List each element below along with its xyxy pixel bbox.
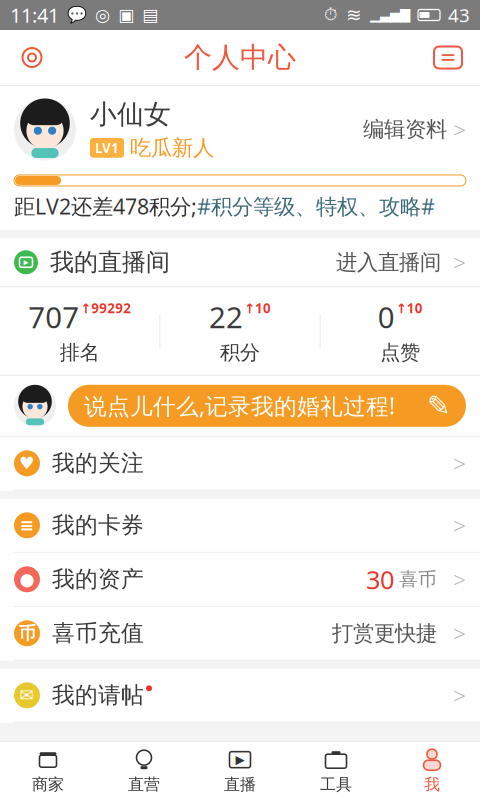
- staticText: 我的直播间: [50, 247, 170, 277]
- staticText: 说点儿什么,记录我的婚礼过程!: [84, 391, 395, 421]
- staticText: 距LV2还差478积分;: [14, 192, 197, 220]
- staticText: >: [453, 448, 466, 478]
- staticText: LV1: [95, 139, 119, 157]
- staticText: ▁▃▅▇: [370, 7, 410, 22]
- staticText: ▣: [118, 5, 134, 25]
- staticText: 打赏更快捷: [332, 620, 437, 646]
- button[interactable]: #积分等级、特权、攻略#: [197, 192, 435, 220]
- staticText: 我的请帖: [52, 681, 144, 709]
- staticText: ▤: [142, 5, 158, 25]
- staticText: 币: [18, 623, 35, 644]
- staticText: 点赞: [380, 340, 420, 365]
- button[interactable]: 直营: [96, 742, 192, 800]
- staticText: 编辑资料: [363, 116, 447, 143]
- staticText: 43: [448, 3, 470, 27]
- button[interactable]: 工具: [288, 742, 384, 800]
- staticText: 个人中心: [184, 40, 296, 75]
- staticText: ●: [19, 569, 34, 589]
- staticText: ≡: [19, 515, 34, 535]
- staticText: 排名: [60, 340, 100, 365]
- staticText: >: [453, 680, 466, 710]
- button[interactable]: 说点儿什么,记录我的婚礼过程!: [0, 376, 480, 436]
- button[interactable]: 商家: [0, 742, 96, 800]
- button[interactable]: ≡: [0, 499, 480, 553]
- staticText: 30: [366, 562, 394, 596]
- staticText: 商家: [32, 775, 64, 794]
- staticText: 0: [378, 297, 395, 336]
- staticText: >: [453, 247, 466, 277]
- button[interactable]: ✉: [0, 669, 480, 723]
- staticText: 直播: [224, 775, 256, 794]
- staticText: 11:41: [10, 2, 59, 28]
- button[interactable]: ▶: [192, 742, 288, 800]
- staticText: >: [453, 510, 466, 540]
- staticText: ▶: [235, 753, 244, 766]
- staticText: 💬: [67, 6, 87, 24]
- staticText: 直营: [128, 775, 160, 794]
- button[interactable]: ●: [0, 553, 480, 607]
- staticText: 喜币充值: [52, 619, 144, 647]
- staticText: >: [453, 618, 466, 648]
- staticText: 工具: [320, 775, 352, 794]
- staticText: 我的资产: [52, 565, 144, 593]
- button[interactable]: 编辑资料: [363, 106, 466, 152]
- staticText: ↑10: [244, 299, 271, 317]
- staticText: ⏱: [324, 6, 338, 23]
- button[interactable]: 消息: [428, 37, 468, 77]
- button[interactable]: ♥: [0, 437, 480, 491]
- staticText: 小仙女: [90, 98, 171, 131]
- staticText: 吃瓜新人: [130, 135, 214, 161]
- button[interactable]: ▶: [0, 238, 480, 286]
- button[interactable]: 币: [0, 607, 480, 661]
- staticText: ↑99292: [80, 299, 131, 317]
- staticText: >: [453, 564, 466, 594]
- staticText: 22: [209, 297, 243, 336]
- staticText: ≋: [346, 4, 362, 26]
- button[interactable]: 设置: [12, 37, 52, 77]
- staticText: 喜币: [399, 568, 437, 591]
- staticText: 我的关注: [52, 449, 144, 477]
- button[interactable]: 我: [384, 742, 480, 800]
- staticText: ♥: [19, 453, 35, 473]
- staticText: #积分等级、特权、攻略#: [197, 192, 435, 220]
- staticText: 我: [424, 775, 440, 794]
- staticText: 进入直播间: [336, 249, 441, 275]
- staticText: ▶: [23, 258, 28, 266]
- staticText: ↑10: [396, 299, 423, 317]
- staticText: ✎: [427, 390, 450, 422]
- staticText: >: [453, 114, 466, 144]
- staticText: ◎: [95, 5, 110, 25]
- staticText: 707: [28, 297, 79, 336]
- staticText: ✉: [19, 685, 34, 705]
- staticText: 我的卡券: [52, 511, 144, 539]
- staticText: 积分: [220, 340, 260, 365]
